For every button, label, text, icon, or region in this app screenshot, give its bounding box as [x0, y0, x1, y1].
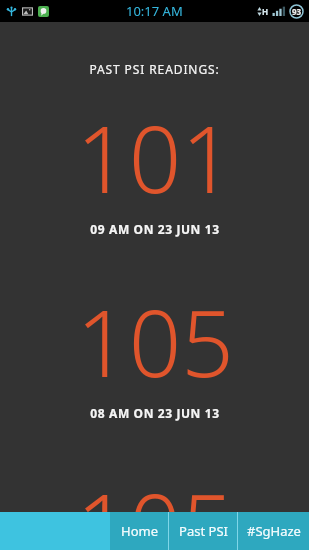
staticText: 08 AM ON 23 JUN 13	[90, 405, 220, 421]
staticText: 101	[76, 95, 234, 220]
staticText: 09 AM ON 23 JUN 13	[90, 221, 220, 237]
staticText: Past PSI	[179, 522, 228, 540]
button[interactable]: Home	[110, 512, 168, 550]
staticText: 93	[292, 6, 302, 17]
button[interactable]: #SgHaze	[238, 512, 309, 550]
staticText: 10:17 AM	[126, 2, 183, 20]
staticText: #SgHaze	[247, 522, 301, 540]
staticText: Home	[121, 522, 158, 540]
staticText: 105	[76, 279, 234, 404]
staticText: 105	[76, 463, 234, 512]
button[interactable]: Past PSI	[169, 512, 237, 550]
staticText: PAST PSI READINGS:	[0, 61, 309, 77]
staticText: H	[262, 6, 269, 17]
